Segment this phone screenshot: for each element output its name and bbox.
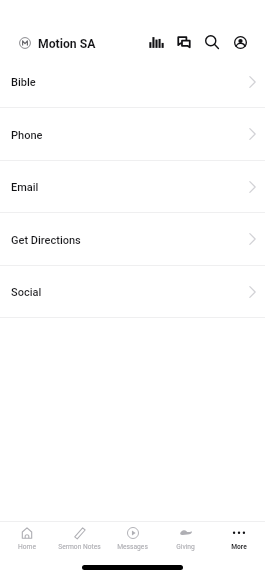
button[interactable]: More [212, 522, 265, 555]
staticText: Giving [176, 543, 195, 551]
staticText: Social [11, 286, 42, 299]
button[interactable]: Sermon Notes [53, 522, 106, 555]
button[interactable]: Email [0, 161, 265, 213]
button[interactable]: Home [0, 522, 53, 555]
button[interactable]: Account [226, 28, 254, 56]
button[interactable]: Messages [106, 522, 159, 555]
staticText: Home [18, 543, 36, 551]
button[interactable]: Search [198, 28, 226, 56]
staticText: Email [11, 181, 39, 194]
staticText: Get Directions [11, 234, 81, 247]
staticText: Motion SA [38, 37, 96, 51]
staticText: Sermon Notes [58, 543, 101, 551]
button[interactable]: Get Directions [0, 213, 265, 266]
staticText: Bible [11, 76, 36, 89]
staticText: Messages [117, 543, 148, 551]
staticText: More [231, 543, 247, 551]
staticText: Phone [11, 129, 43, 142]
button[interactable]: Bible [0, 56, 265, 108]
button[interactable]: Activity [142, 28, 170, 56]
button[interactable]: Social [0, 266, 265, 318]
button[interactable]: Phone [0, 108, 265, 161]
button[interactable]: Messages [170, 28, 198, 56]
button[interactable]: Giving [159, 522, 212, 555]
